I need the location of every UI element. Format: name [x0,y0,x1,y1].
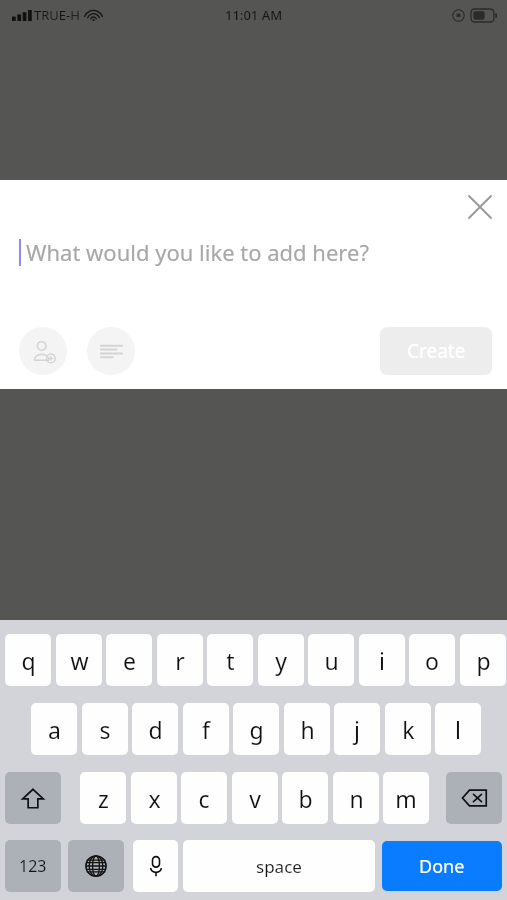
staticText: f [202,714,210,745]
button[interactable]: 123 [5,840,61,892]
staticText: q [21,645,36,676]
staticText: o [425,645,439,676]
button[interactable]: d [132,703,178,755]
staticText: u [324,645,339,676]
staticText: n [349,783,364,814]
button[interactable]: Dictate [133,840,178,892]
button[interactable]: h [284,703,330,755]
button[interactable]: f [183,703,229,755]
button[interactable]: q [5,634,51,686]
staticText: Create [407,338,466,364]
button[interactable]: x [131,772,177,824]
button[interactable]: Next keyboard [68,840,124,892]
button[interactable]: space [183,840,375,892]
staticText: g [249,714,264,745]
staticText: e [123,645,136,676]
button[interactable]: l [435,703,481,755]
staticText: Done [419,854,465,879]
button[interactable]: Shift [5,772,61,824]
staticText: c [198,783,210,814]
staticText: d [148,714,163,745]
staticText: m [395,783,417,814]
staticText: TRUE-H [34,6,80,24]
staticText: s [99,714,111,745]
button[interactable]: Backspace [446,772,502,824]
button[interactable]: j [334,703,380,755]
button[interactable]: s [82,703,128,755]
button[interactable]: b [282,772,328,824]
staticText: p [476,645,491,676]
button[interactable]: v [232,772,278,824]
button[interactable]: a [31,703,77,755]
button[interactable]: Add description [87,327,135,375]
staticText: z [98,783,109,814]
staticText: y [275,645,287,676]
staticText: j [354,714,360,745]
button[interactable]: What would you like to add here? [19,237,507,267]
button[interactable]: o [409,634,455,686]
button[interactable]: g [233,703,279,755]
button[interactable]: t [207,634,253,686]
staticText: x [148,783,161,814]
button[interactable]: z [80,772,126,824]
staticText: What would you like to add here? [26,237,369,267]
button[interactable]: i [359,634,405,686]
button[interactable]: y [258,634,304,686]
button[interactable]: c [181,772,227,824]
staticText: v [249,783,261,814]
button[interactable]: Add people [19,327,67,375]
button[interactable]: k [385,703,431,755]
button[interactable]: p [460,634,506,686]
staticText: a [48,714,61,745]
staticText: 11:01 AM [225,6,283,24]
staticText: h [300,714,315,745]
staticText: i [379,645,385,676]
staticText: 123 [19,855,47,877]
button[interactable]: Done [382,841,502,891]
button[interactable]: n [333,772,379,824]
button[interactable]: e [106,634,152,686]
button[interactable]: r [157,634,203,686]
staticText: w [70,645,89,676]
button[interactable]: m [383,772,429,824]
staticText: space [256,855,302,878]
button[interactable]: Close [460,187,500,227]
staticText: t [226,645,235,676]
staticText: b [298,783,313,814]
staticText: l [455,714,461,745]
staticText: r [175,645,185,676]
button[interactable]: Create [380,327,492,375]
staticText: k [402,714,415,745]
button[interactable]: u [308,634,354,686]
button[interactable]: w [56,634,102,686]
